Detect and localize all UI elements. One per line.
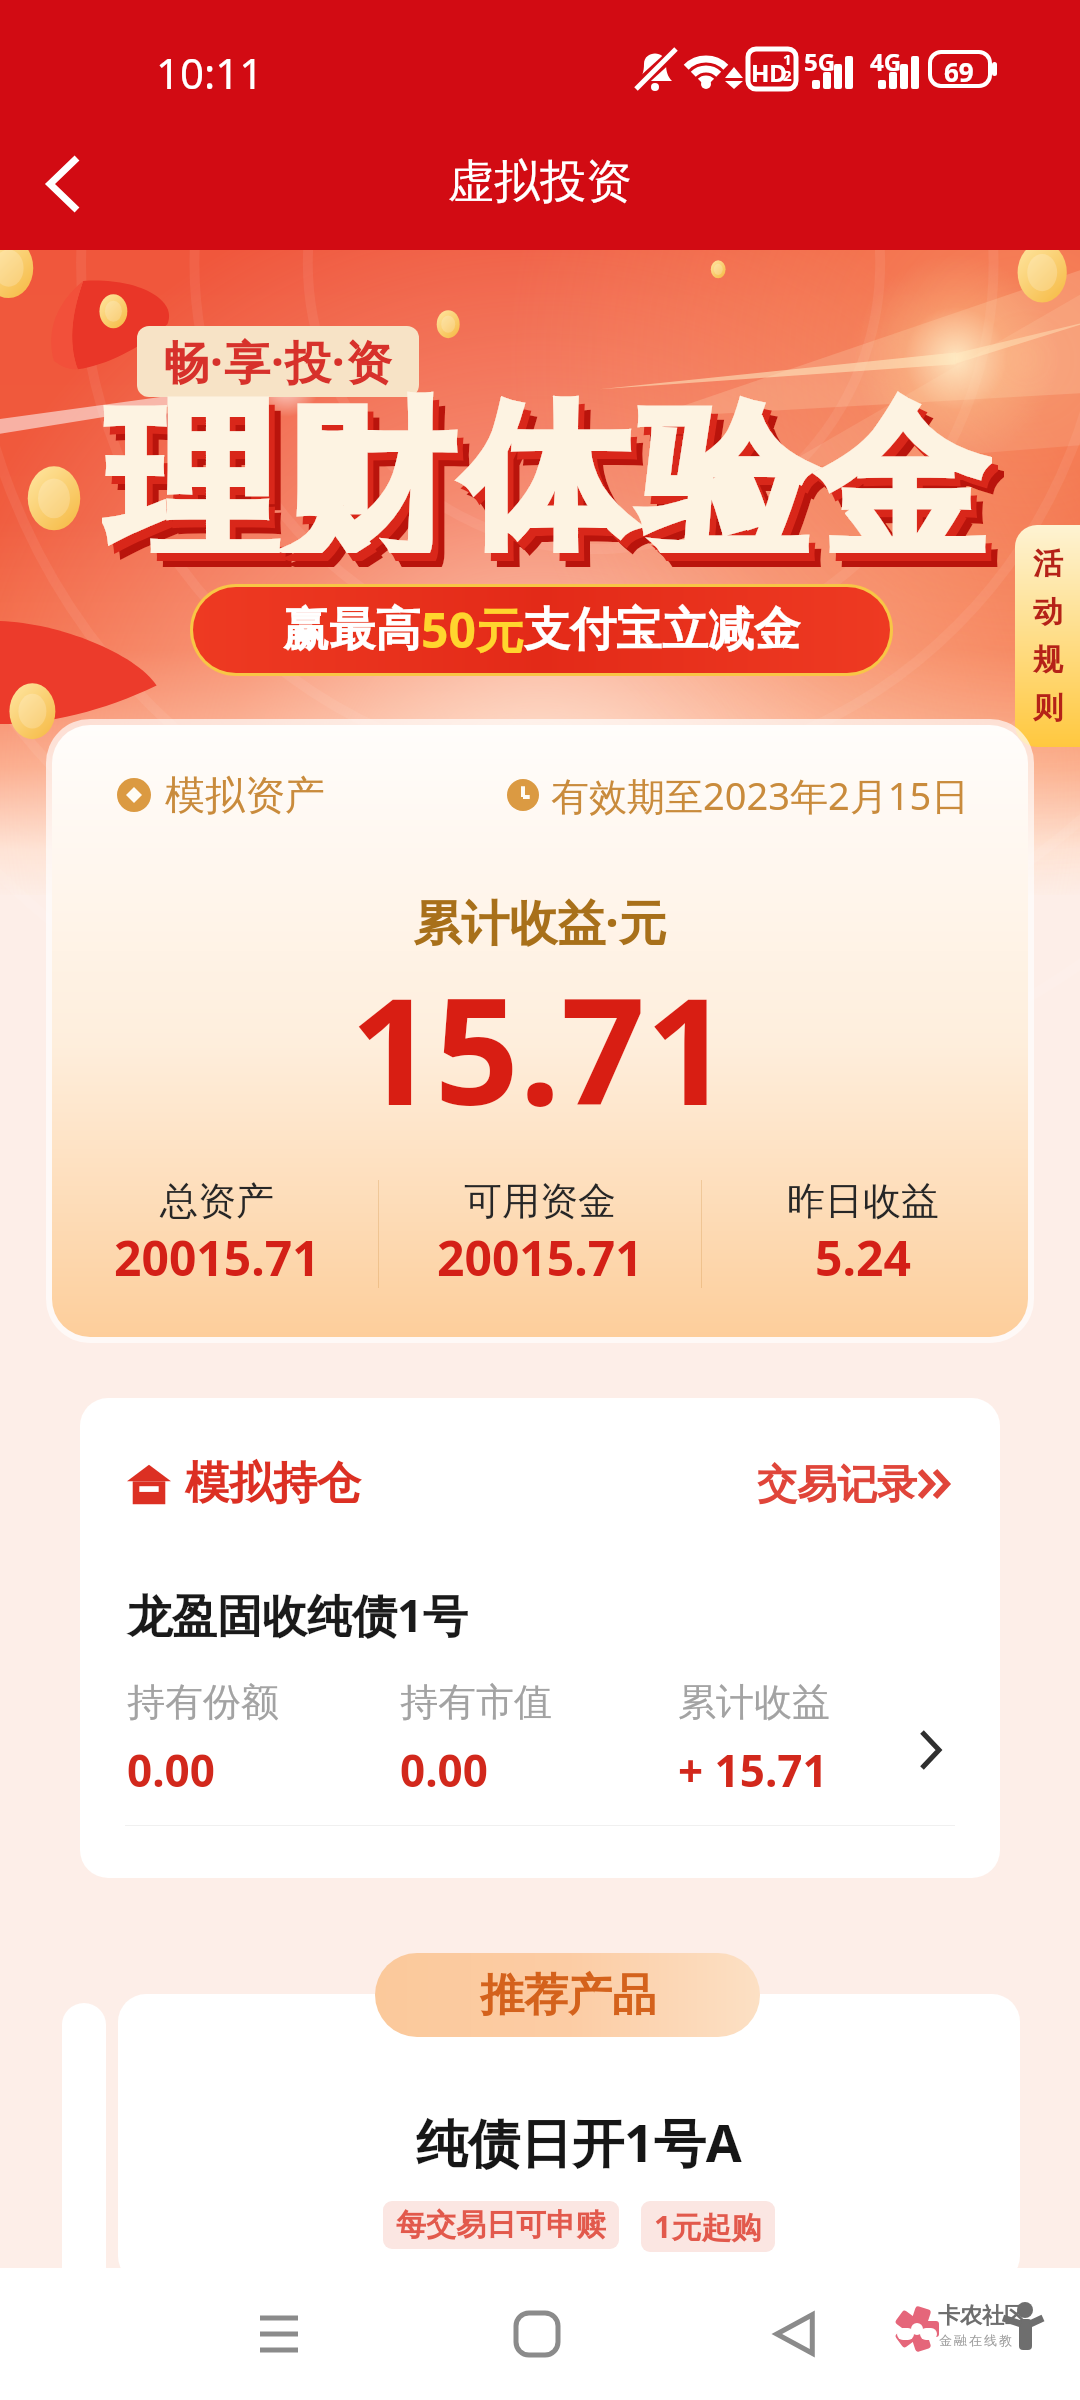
staticText: 理财体验金 <box>102 378 992 553</box>
staticText: 累计收益·元 <box>52 889 1028 955</box>
staticText: 畅·享·投·资 <box>163 330 393 393</box>
staticText: 2 <box>783 65 792 85</box>
staticText: HD <box>751 56 787 89</box>
staticText: 1 <box>783 49 792 69</box>
staticText: 0.00 <box>127 1740 215 1800</box>
button[interactable]: Home <box>477 2268 597 2400</box>
staticText: 模拟资产 <box>165 770 325 820</box>
button[interactable]: 活 动 规 则 <box>1015 525 1080 747</box>
staticText: 交易记录 <box>757 1459 917 1509</box>
button[interactable]: View holding details <box>900 1720 960 1780</box>
staticText: 4G <box>870 45 902 78</box>
staticText: 推荐产品 <box>480 1968 656 2023</box>
staticText: 昨日收益 <box>787 1177 939 1225</box>
staticText: 累计收益 <box>678 1678 830 1726</box>
staticText: 虚拟投资 <box>448 153 632 211</box>
staticText: 持有市值 <box>400 1678 552 1726</box>
button[interactable]: Back <box>19 140 107 228</box>
button[interactable]: Recent apps <box>219 2268 339 2400</box>
staticText: 1元起购 <box>654 2206 762 2247</box>
button[interactable]: Back <box>735 2268 855 2400</box>
button[interactable]: 赢最高 <box>193 587 890 673</box>
staticText: 赢最高 <box>283 601 421 659</box>
staticText: 龙盈固收纯债1号 <box>127 1584 468 1645</box>
staticText: 20015.71 <box>114 1225 320 1290</box>
staticText: 纯债日开1号A <box>416 2106 742 2177</box>
staticText: 有效期至2023年2月15日 <box>551 769 970 821</box>
staticText: 理财体验金 <box>114 392 1004 567</box>
staticText: 10:11 <box>156 44 264 101</box>
staticText: 可用资金 <box>464 1177 616 1225</box>
staticText: 卡农社区 <box>938 2302 1026 2330</box>
staticText: 支付宝立减金 <box>524 601 800 659</box>
button[interactable]: 推荐产品 <box>375 1953 760 2037</box>
staticText: 模拟持仓 <box>185 1456 361 1511</box>
staticText: 持有份额 <box>127 1678 279 1726</box>
button[interactable]: 交易记录 <box>757 1459 953 1509</box>
staticText: 理财体验金 <box>108 386 998 561</box>
staticText: 69 <box>944 54 974 89</box>
staticText: 5G <box>804 45 836 78</box>
staticText: + 15.71 <box>678 1740 828 1800</box>
staticText: 活 动 规 则 <box>1033 545 1063 727</box>
staticText: 5.24 <box>815 1225 911 1290</box>
staticText: 15.71 <box>52 947 1028 1149</box>
staticText: 每交易日可申赎 <box>396 2206 606 2244</box>
staticText: 总资产 <box>160 1177 274 1225</box>
staticText: 50元 <box>421 597 524 663</box>
button[interactable]: 纯债日开1号A <box>118 1994 1020 2284</box>
staticText: 金融在线教 <box>938 2332 1013 2348</box>
button[interactable]: 模拟持仓 <box>80 1398 1000 1878</box>
staticText: 20015.71 <box>437 1225 643 1290</box>
staticText: 0.00 <box>400 1740 488 1800</box>
